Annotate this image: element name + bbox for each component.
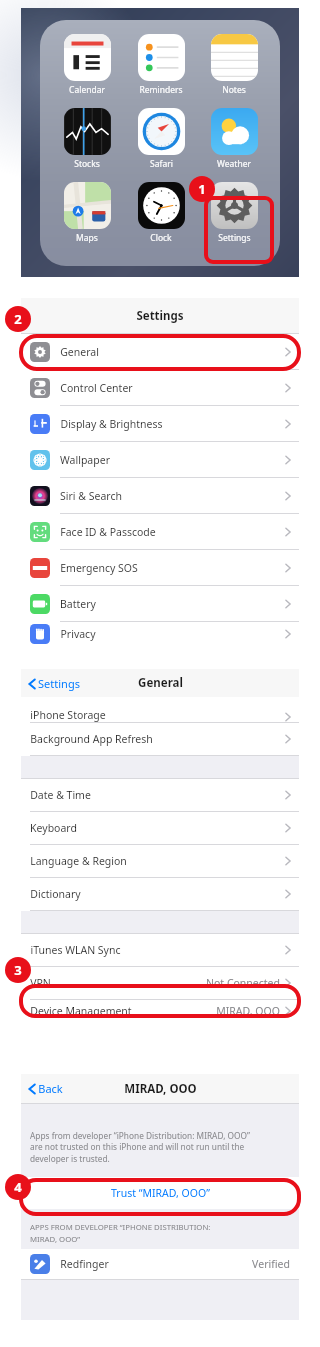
staticText: MIRAD, OOO: [124, 1081, 197, 1097]
staticText: Trust “MIRAD, OOO”: [111, 1186, 210, 1200]
staticText: Face ID & Passcode: [60, 525, 156, 539]
staticText: Emergency SOS: [60, 561, 138, 575]
staticText: APPS FROM DEVELOPER “IPHONE DISTRIBUTION…: [30, 1222, 211, 1244]
staticText: Reminders: [139, 84, 183, 96]
staticText: Stocks: [74, 158, 100, 170]
button[interactable]: Control Center: [21, 370, 299, 405]
staticText: iTunes WLAN Sync: [30, 943, 121, 957]
staticText: General: [60, 345, 99, 359]
staticText: 2: [14, 310, 22, 328]
staticText: Device Management: [30, 1004, 132, 1018]
staticText: Apps from developer “iPhone Distribution…: [30, 1130, 250, 1165]
staticText: Dictionary: [30, 887, 81, 901]
button[interactable]: VPN: [21, 967, 299, 999]
staticText: Language & Region: [30, 854, 127, 868]
button[interactable]: Reminders: [124, 34, 198, 96]
staticText: Siri & Search: [60, 489, 122, 503]
button[interactable]: Weather: [198, 108, 270, 170]
button[interactable]: Settings: [28, 676, 80, 691]
button[interactable]: Display & Brightness: [21, 406, 299, 441]
button[interactable]: Stocks: [50, 108, 124, 170]
button[interactable]: Clock: [124, 182, 198, 244]
button[interactable]: iTunes WLAN Sync: [21, 934, 299, 966]
button[interactable]: Date & Time: [21, 779, 299, 811]
staticText: Calendar: [69, 84, 105, 96]
staticText: Verified: [252, 1257, 290, 1271]
button[interactable]: Settings: [198, 182, 270, 244]
button[interactable]: Dictionary: [21, 878, 299, 910]
staticText: Safari: [150, 158, 173, 170]
staticText: Control Center: [60, 381, 133, 395]
button[interactable]: General: [21, 334, 299, 369]
staticText: Keyboard: [30, 821, 77, 835]
button[interactable]: Trust button highlight: [19, 1178, 301, 1216]
button[interactable]: Settings app highlight: [204, 196, 274, 264]
staticText: VPN: [30, 976, 51, 990]
button[interactable]: Siri & Search: [21, 478, 299, 513]
staticText: Maps: [76, 232, 98, 244]
button[interactable]: iPhone Storage: [21, 697, 299, 722]
staticText: Settings: [218, 232, 251, 244]
staticText: iPhone Storage: [30, 708, 106, 722]
button[interactable]: Safari: [124, 108, 198, 170]
staticText: MIRAD, OOO: [216, 1004, 280, 1018]
staticText: Back: [38, 1081, 63, 1096]
button[interactable]: Background App Refresh: [21, 723, 299, 755]
staticText: General: [138, 675, 183, 691]
staticText: 4: [14, 1178, 22, 1196]
staticText: Weather: [217, 158, 251, 170]
staticText: Background App Refresh: [30, 732, 153, 746]
button[interactable]: Device Management highlight: [19, 984, 301, 1018]
staticText: Date & Time: [30, 788, 91, 802]
button[interactable]: Language & Region: [21, 845, 299, 877]
button[interactable]: Maps: [50, 182, 124, 244]
staticText: Notes: [222, 84, 246, 96]
button[interactable]: Wallpaper: [21, 442, 299, 477]
staticText: Settings: [38, 676, 80, 691]
staticText: 3: [14, 961, 22, 979]
staticText: Battery: [60, 597, 96, 611]
staticText: Not Connected: [206, 976, 280, 990]
button[interactable]: Notes: [198, 34, 270, 96]
staticText: 1: [198, 180, 206, 198]
button[interactable]: Face ID & Passcode: [21, 514, 299, 549]
staticText: Wallpaper: [60, 453, 110, 467]
staticText: Clock: [150, 232, 172, 244]
button[interactable]: Trust “MIRAD, OOO”: [21, 1177, 299, 1209]
button[interactable]: Battery: [21, 586, 299, 621]
button[interactable]: Back: [28, 1081, 63, 1096]
button[interactable]: Calendar: [50, 34, 124, 96]
button[interactable]: General row highlight: [19, 334, 301, 371]
button[interactable]: Device Management: [21, 1000, 299, 1022]
button[interactable]: Keyboard: [21, 812, 299, 844]
staticText: Display & Brightness: [60, 417, 163, 431]
button[interactable]: Privacy: [21, 622, 299, 646]
button[interactable]: Redfinger: [21, 1249, 299, 1279]
staticText: Privacy: [60, 627, 96, 641]
staticText: Settings: [136, 308, 184, 324]
button[interactable]: Emergency SOS: [21, 550, 299, 585]
staticText: Redfinger: [60, 1257, 109, 1271]
